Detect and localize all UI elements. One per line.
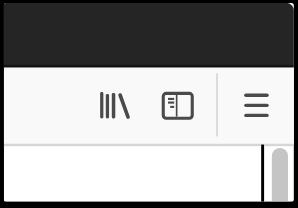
button[interactable]: Library	[94, 84, 138, 128]
button[interactable]: Scroll page	[268, 148, 288, 201]
button[interactable]: Reader view	[156, 84, 200, 128]
button[interactable]: Open application menu	[234, 84, 278, 128]
